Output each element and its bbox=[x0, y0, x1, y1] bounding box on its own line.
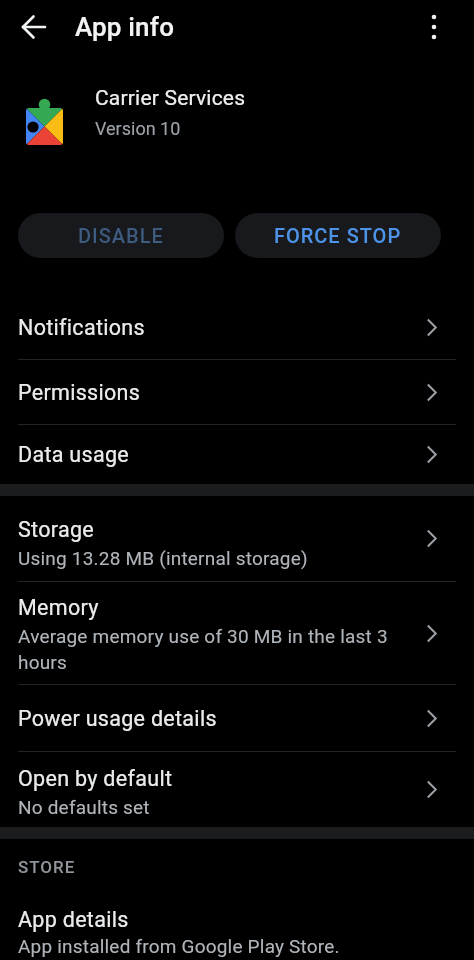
staticText: Notifications bbox=[18, 315, 145, 340]
staticText: Power usage details bbox=[18, 706, 217, 731]
staticText: No defaults set bbox=[18, 796, 150, 818]
staticText: Version 10 bbox=[95, 118, 181, 139]
button[interactable]: Data usage bbox=[0, 425, 474, 484]
staticText: STORE bbox=[18, 857, 76, 877]
staticText: Storage bbox=[18, 517, 94, 542]
button[interactable]: Permissions bbox=[0, 360, 474, 424]
staticText: App installed from Google Play Store. bbox=[18, 935, 340, 957]
button[interactable] bbox=[416, 9, 452, 45]
button[interactable] bbox=[14, 7, 54, 47]
staticText: FORCE STOP bbox=[274, 224, 402, 247]
button[interactable]: FORCE STOP bbox=[235, 213, 441, 258]
staticText: App info bbox=[75, 12, 175, 42]
button[interactable]: Memory bbox=[0, 582, 474, 684]
staticText: Data usage bbox=[18, 442, 129, 467]
button[interactable]: DISABLE bbox=[18, 213, 224, 258]
button[interactable]: App details bbox=[0, 887, 474, 960]
button[interactable]: Power usage details bbox=[0, 685, 474, 751]
staticText: Average memory use of 30 MB in the last … bbox=[18, 625, 398, 673]
staticText: App details bbox=[18, 907, 129, 932]
staticText: Carrier Services bbox=[95, 86, 246, 111]
button[interactable]: Notifications bbox=[0, 295, 474, 359]
staticText: Memory bbox=[18, 595, 99, 620]
button[interactable]: Storage bbox=[0, 496, 474, 581]
staticText: Open by default bbox=[18, 766, 173, 791]
button[interactable]: Open by default bbox=[0, 752, 474, 827]
staticText: Permissions bbox=[18, 380, 141, 405]
staticText: DISABLE bbox=[78, 224, 164, 247]
staticText: Using 13.28 MB (internal storage) bbox=[18, 547, 308, 569]
